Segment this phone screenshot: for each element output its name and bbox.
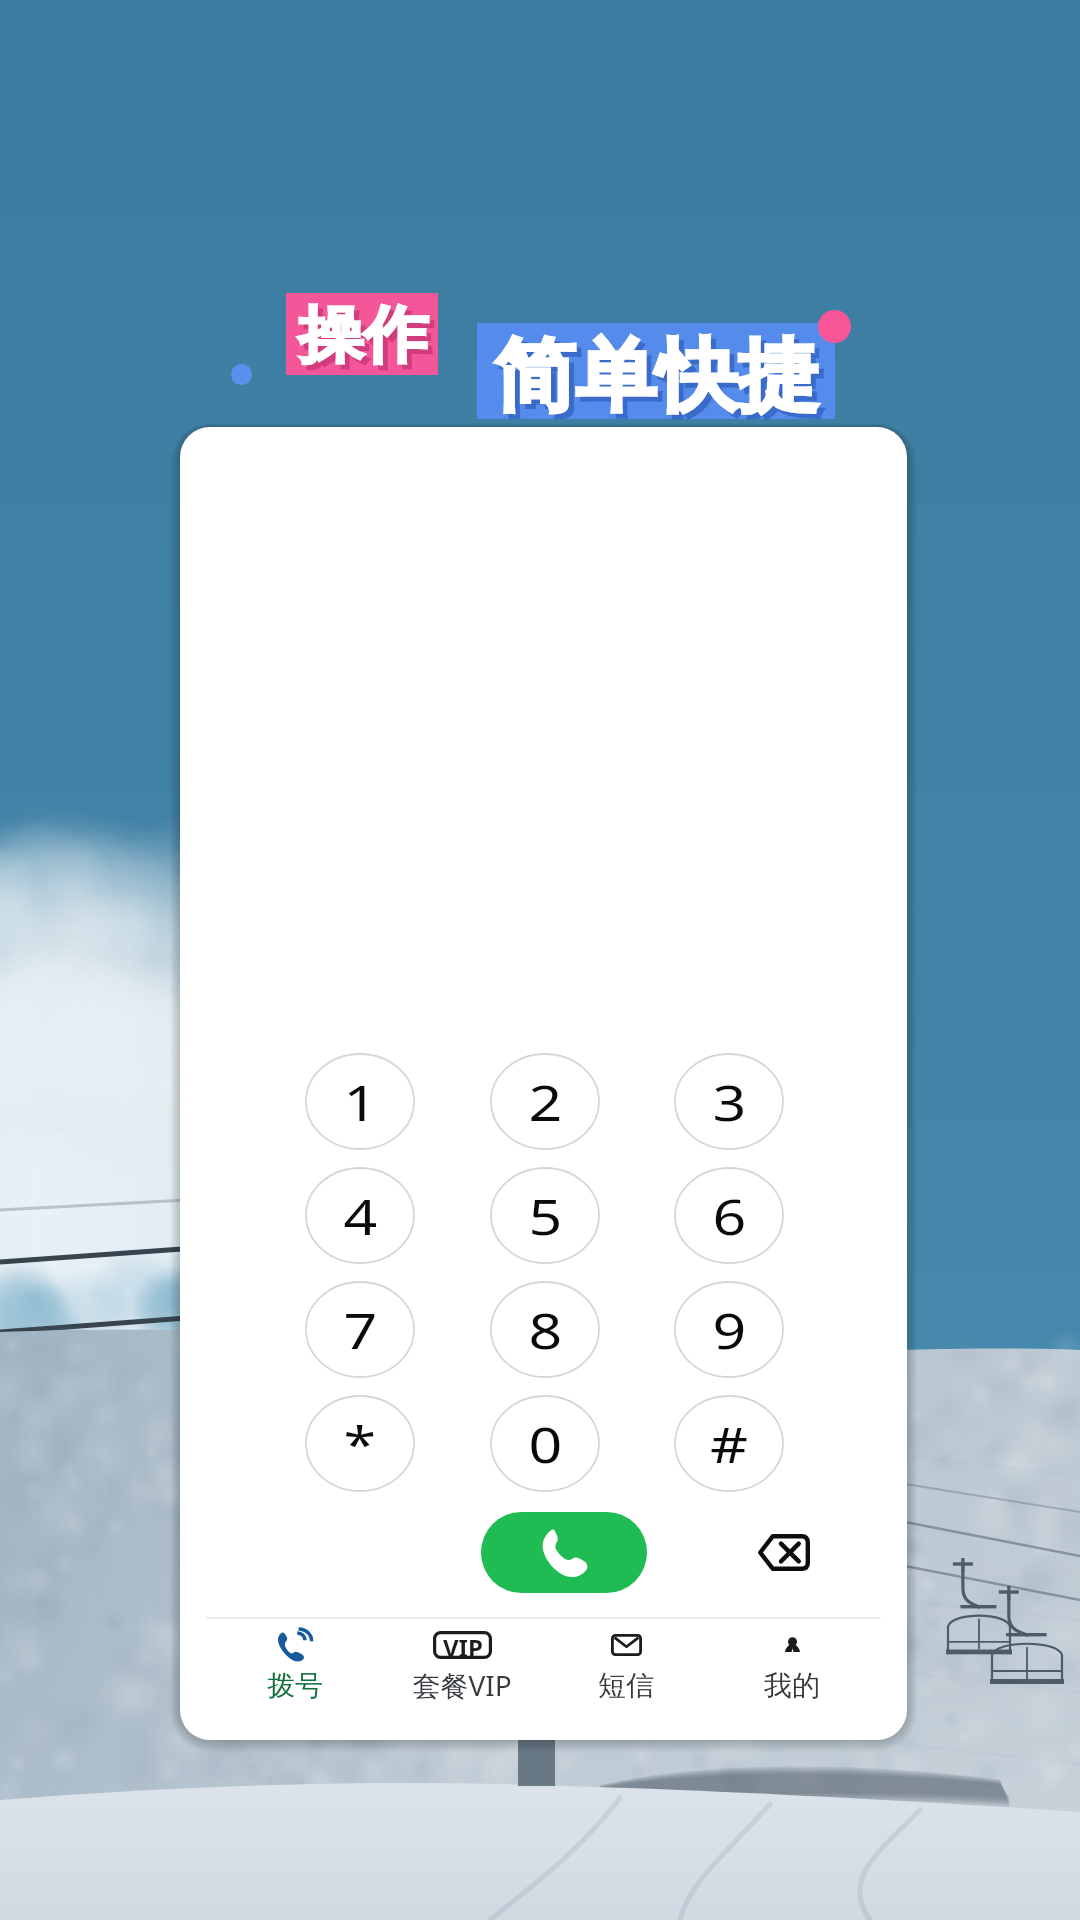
staticText: 我的 (764, 1668, 820, 1703)
staticText: 8 (528, 1296, 563, 1364)
button[interactable]: Call (481, 1512, 647, 1593)
staticText: * (343, 1410, 376, 1478)
button[interactable]: 6 (674, 1167, 784, 1264)
button[interactable]: 3 (674, 1053, 784, 1150)
button[interactable]: 我的 (709, 1620, 875, 1735)
staticText: 拨号 (267, 1668, 323, 1703)
staticText: 6 (712, 1182, 747, 1250)
button[interactable]: 2 (490, 1053, 600, 1150)
staticText: 2 (528, 1068, 563, 1136)
staticText: 操作 (298, 297, 429, 374)
button[interactable]: 9 (674, 1281, 784, 1378)
staticText: # (710, 1410, 749, 1478)
button[interactable]: 短信 (543, 1620, 709, 1735)
staticText: 7 (343, 1296, 378, 1364)
staticText: 短信 (598, 1668, 654, 1703)
button[interactable]: VIP (379, 1620, 545, 1735)
staticText: 4 (343, 1182, 378, 1250)
staticText: VIP (443, 1631, 483, 1659)
button[interactable]: # (674, 1395, 784, 1492)
staticText: 0 (528, 1410, 563, 1478)
staticText: 简单快捷 (499, 332, 824, 431)
staticText: 9 (712, 1296, 747, 1364)
staticText: 套餐VIP (412, 1666, 512, 1704)
button[interactable]: 拨号 (212, 1620, 378, 1735)
button[interactable]: * (305, 1395, 415, 1492)
button[interactable]: Backspace (736, 1515, 830, 1589)
staticText: 1 (343, 1068, 378, 1136)
staticText: 简单快捷 (494, 327, 819, 426)
button[interactable]: 0 (490, 1395, 600, 1492)
button[interactable]: 7 (305, 1281, 415, 1378)
staticText: 3 (712, 1068, 747, 1136)
button[interactable]: 5 (490, 1167, 600, 1264)
button[interactable]: 1 (305, 1053, 415, 1150)
button[interactable]: 8 (490, 1281, 600, 1378)
button[interactable]: 4 (305, 1167, 415, 1264)
staticText: 5 (528, 1182, 563, 1250)
staticText: 操作 (303, 302, 434, 379)
